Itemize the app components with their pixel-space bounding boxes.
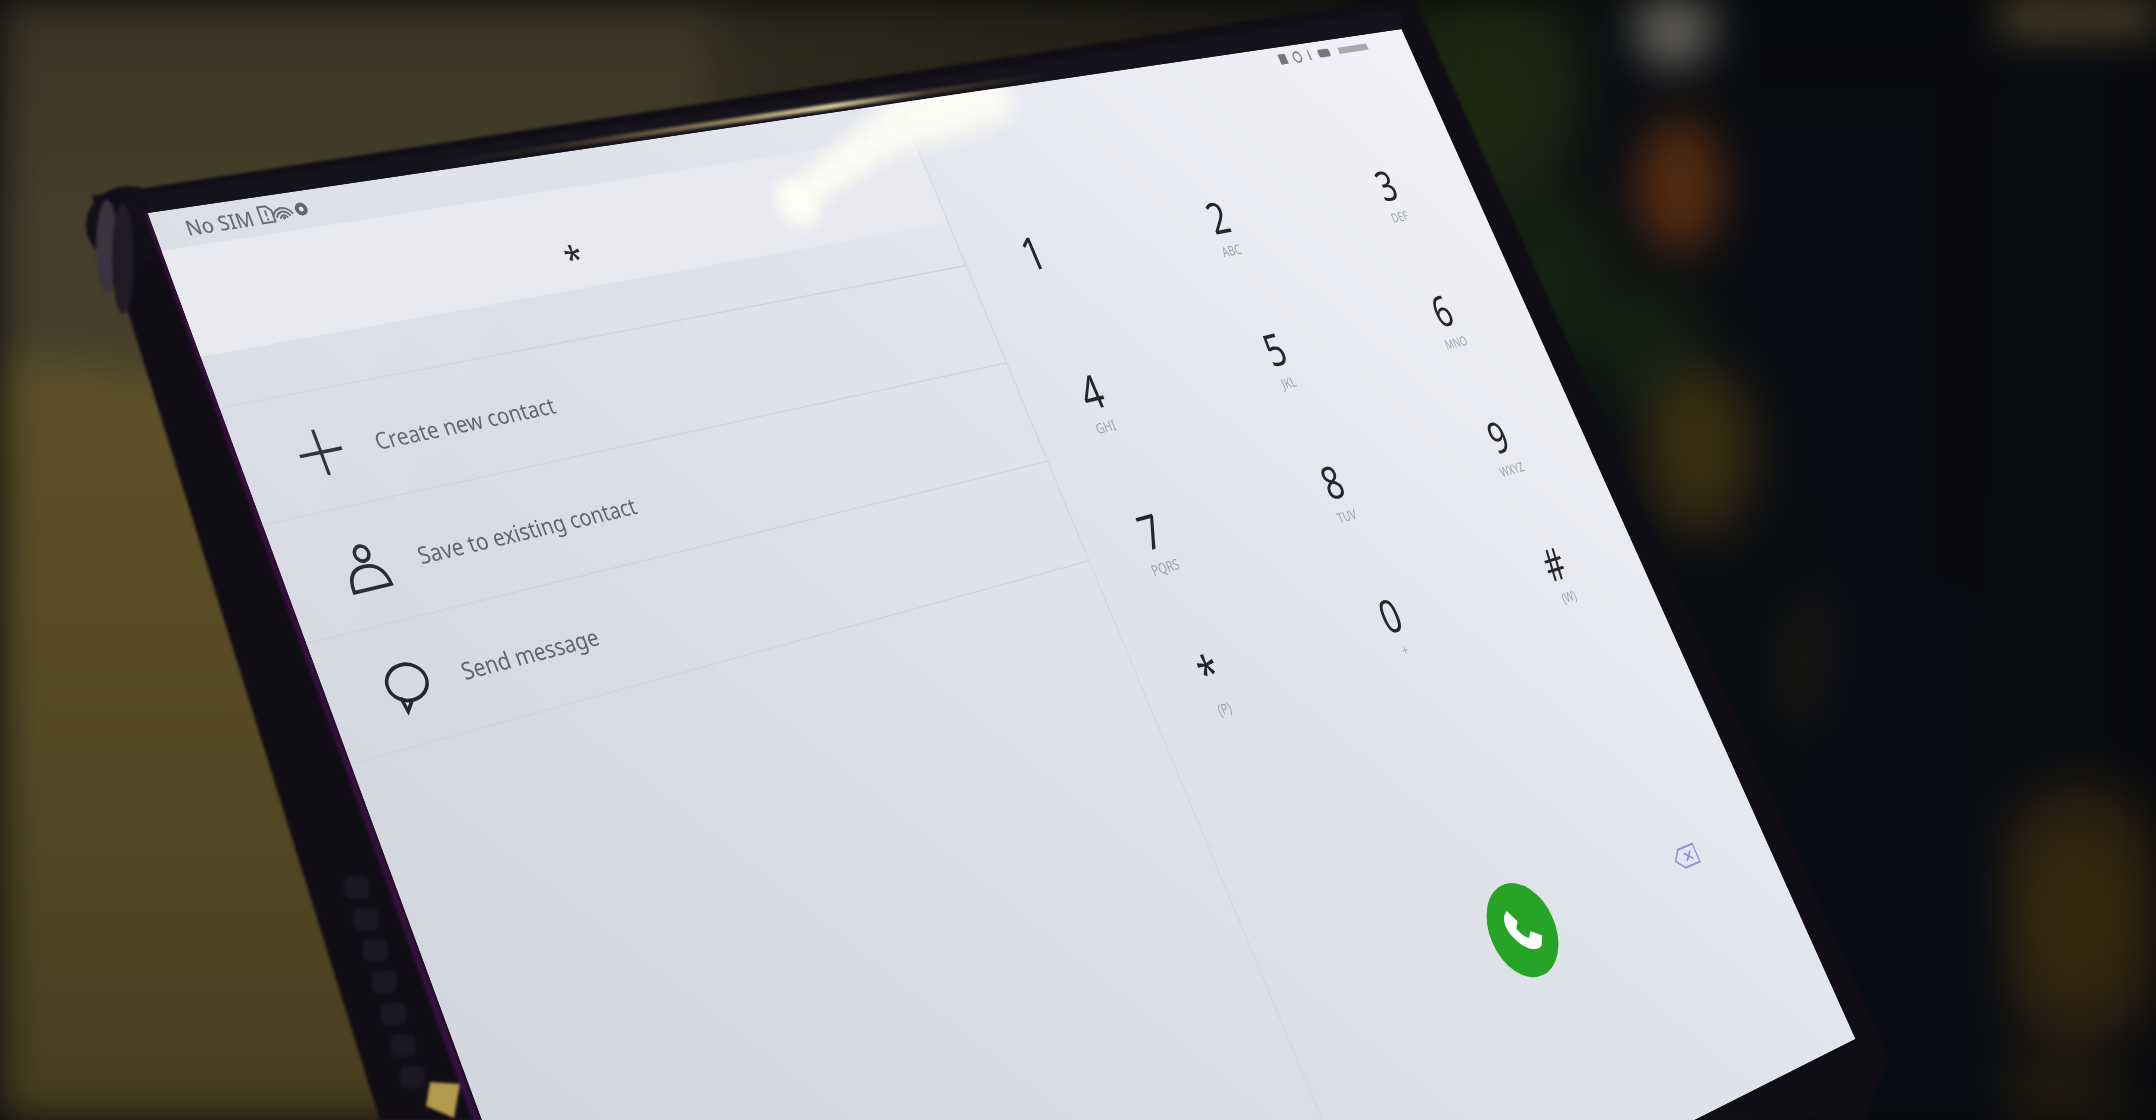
- staticText: (W): [1558, 585, 1579, 607]
- staticText: ABC: [1218, 239, 1245, 261]
- staticText: PQRS: [1147, 553, 1183, 580]
- staticText: 3: [1366, 157, 1406, 214]
- button[interactable]: 7: [1034, 444, 1265, 632]
- staticText: Send message: [456, 620, 604, 686]
- button[interactable]: 8: [1225, 400, 1438, 576]
- staticText: #: [1532, 533, 1576, 595]
- button[interactable]: 1: [916, 174, 1148, 344]
- staticText: Create new contact: [369, 389, 560, 456]
- button[interactable]: Send message: [306, 461, 1088, 763]
- button[interactable]: Call: [1473, 872, 1572, 989]
- staticText: 0: [1368, 583, 1412, 648]
- staticText: DEF: [1388, 206, 1411, 226]
- button[interactable]: Backspace: [1669, 839, 1703, 875]
- button[interactable]: *: [1093, 581, 1324, 778]
- button[interactable]: 9: [1399, 360, 1596, 526]
- staticText: 7: [1127, 498, 1173, 565]
- staticText: WXYZ: [1496, 457, 1527, 481]
- button[interactable]: Save to existing contact: [262, 362, 1047, 643]
- staticText: No SIM: [181, 204, 259, 242]
- staticText: +: [1398, 639, 1412, 660]
- staticText: *: [556, 232, 593, 282]
- button[interactable]: 4: [975, 309, 1206, 488]
- staticText: 6: [1421, 281, 1462, 340]
- staticText: *: [1186, 638, 1232, 707]
- staticText: 1: [1010, 221, 1055, 285]
- button[interactable]: 5: [1167, 272, 1381, 440]
- button[interactable]: 0: [1283, 530, 1496, 714]
- staticText: 4: [1068, 359, 1114, 424]
- staticText: 8: [1310, 450, 1354, 514]
- staticText: 9: [1477, 407, 1518, 467]
- button[interactable]: 6: [1343, 237, 1540, 396]
- staticText: 5: [1253, 318, 1296, 380]
- button[interactable]: 3: [1287, 116, 1485, 267]
- staticText: 2: [1196, 187, 1239, 248]
- staticText: Save to existing contact: [412, 489, 641, 570]
- button[interactable]: Create new contact: [219, 265, 1006, 524]
- staticText: (P): [1213, 696, 1235, 720]
- button[interactable]: #: [1455, 483, 1652, 657]
- staticText: MNO: [1441, 331, 1470, 353]
- button[interactable]: 2: [1110, 144, 1324, 304]
- staticText: JKL: [1278, 372, 1299, 393]
- staticText: TUV: [1334, 504, 1359, 527]
- staticText: GHI: [1092, 415, 1119, 438]
